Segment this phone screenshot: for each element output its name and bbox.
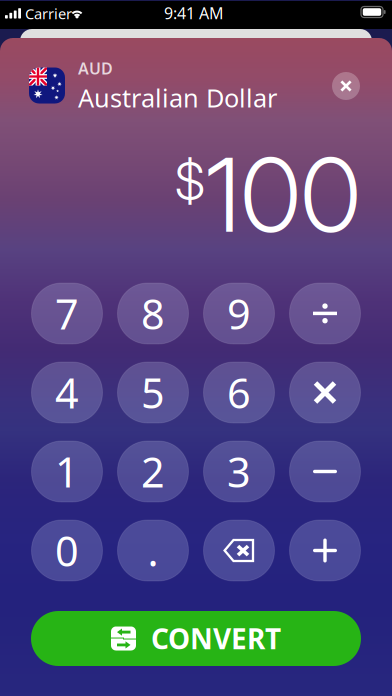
button[interactable]: 0 <box>31 520 102 581</box>
button[interactable]: Delete <box>203 520 274 581</box>
button[interactable]: 1 <box>31 441 102 502</box>
button[interactable]: 9 <box>203 283 274 344</box>
staticText: AUD <box>78 58 113 79</box>
staticText: Australian Dollar <box>78 81 277 114</box>
staticText: CONVERT <box>151 620 281 657</box>
button[interactable]: 8 <box>117 283 188 344</box>
staticText: 6 <box>227 365 251 420</box>
staticText: 9 <box>227 286 251 341</box>
staticText: 5 <box>141 365 165 420</box>
staticText: Carrier <box>25 4 72 23</box>
staticText: 4 <box>55 365 79 420</box>
staticText: $ <box>174 149 205 212</box>
staticText: 3 <box>227 444 251 499</box>
staticText: 100 <box>205 134 360 256</box>
button[interactable]: 4 <box>31 362 102 423</box>
button[interactable]: 2 <box>117 441 188 502</box>
staticText: 2 <box>141 444 165 499</box>
button[interactable]: 3 <box>203 441 274 502</box>
staticText: 1 <box>55 444 79 499</box>
button[interactable]: . <box>117 520 188 581</box>
button[interactable]: 5 <box>117 362 188 423</box>
button[interactable]: 7 <box>31 283 102 344</box>
button[interactable]: Close <box>332 72 360 100</box>
staticText: 0 <box>55 523 79 578</box>
button[interactable]: Multiply <box>289 362 360 423</box>
staticText: 8 <box>141 286 165 341</box>
staticText: . <box>147 523 158 578</box>
button[interactable]: Add <box>289 520 360 581</box>
button[interactable]: 6 <box>203 362 274 423</box>
staticText: 7 <box>55 286 79 341</box>
button[interactable]: Subtract <box>289 441 360 502</box>
button[interactable]: CONVERT <box>31 611 361 666</box>
button[interactable]: Divide <box>289 283 360 344</box>
staticText: 9:41 AM <box>164 2 224 24</box>
